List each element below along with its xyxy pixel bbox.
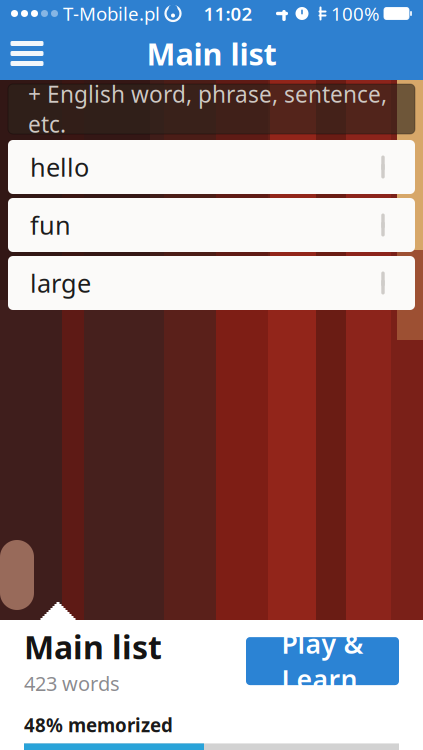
staticText: 48% memorized	[24, 713, 173, 737]
button[interactable]: + English word, phrase, sentence, etc.	[8, 84, 415, 134]
staticText: large	[30, 266, 91, 300]
button[interactable]: Play & Learn	[246, 637, 399, 685]
staticText: Main list	[146, 33, 276, 74]
staticText: + English word, phrase, sentence, etc.	[28, 79, 387, 139]
staticText: 11:02	[203, 1, 252, 26]
staticText: Main list	[24, 626, 162, 668]
staticText: 423 words	[24, 670, 120, 697]
button[interactable]: hello	[8, 140, 415, 194]
button[interactable]: fun	[8, 198, 415, 252]
staticText: fun	[30, 208, 71, 242]
button[interactable]: large	[8, 256, 415, 310]
staticText: 100%	[331, 1, 380, 26]
staticText: Play & Learn	[281, 626, 363, 696]
staticText: T-Mobile.pl	[63, 1, 160, 26]
staticText: hello	[30, 150, 89, 184]
button[interactable]: Menu	[0, 27, 54, 80]
